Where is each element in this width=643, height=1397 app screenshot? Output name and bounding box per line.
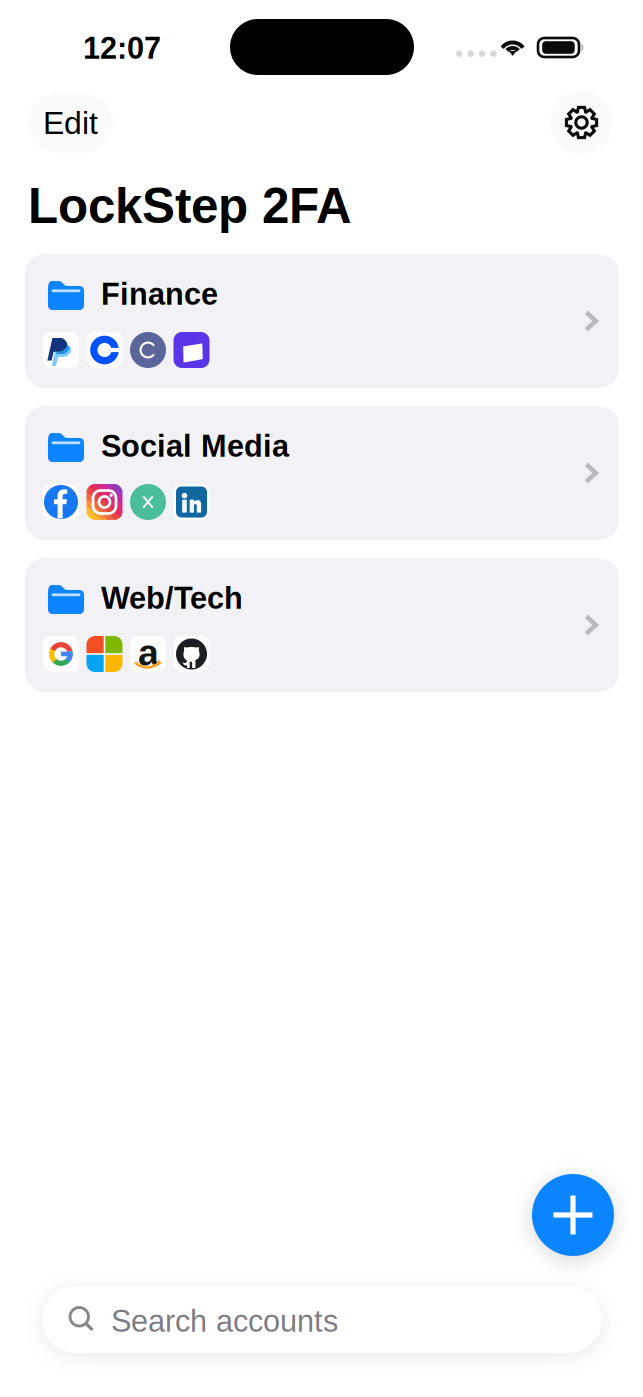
button[interactable]: Social Media xyxy=(25,406,619,540)
button[interactable]: Settings xyxy=(550,91,613,154)
staticText: LockStep 2FA xyxy=(28,178,352,233)
staticText: 12:07 xyxy=(83,31,161,65)
button[interactable]: Web/Tech xyxy=(25,558,619,692)
button[interactable]: Finance xyxy=(25,254,619,388)
button[interactable]: Add account xyxy=(532,1174,614,1256)
staticText: Search accounts xyxy=(111,1304,338,1338)
staticText: Edit xyxy=(43,105,98,141)
button[interactable]: Search accounts xyxy=(42,1286,602,1353)
staticText: Web/Tech xyxy=(101,581,243,615)
staticText: Social Media xyxy=(101,429,289,463)
staticText: Finance xyxy=(101,277,218,311)
button[interactable]: Edit xyxy=(28,93,113,153)
staticText: a xyxy=(138,632,159,673)
